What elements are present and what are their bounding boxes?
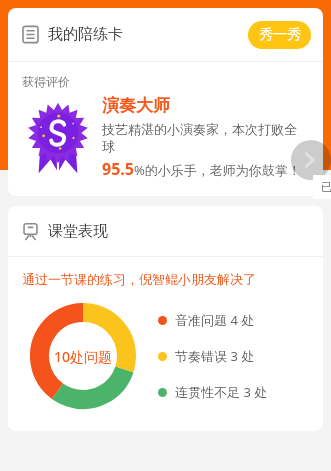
staticText: 演奏大师: [102, 95, 170, 116]
staticText: 通过一节课的练习，倪智鲲小朋友解决了: [22, 271, 256, 287]
button[interactable]: 课堂表现: [8, 206, 323, 256]
button[interactable]: Expand: [313, 175, 331, 199]
staticText: 10处问题: [54, 347, 113, 366]
staticText: 我的陪练卡: [48, 25, 123, 44]
staticText: 获得评价: [22, 74, 70, 89]
button[interactable]: 秀一秀: [248, 21, 311, 49]
staticText: 课堂表现: [48, 222, 108, 241]
button[interactable]: 我的陪练卡: [8, 8, 323, 61]
staticText: 音准问题 4 处: [175, 311, 255, 329]
staticText: 已: [321, 180, 331, 194]
staticText: 95.5%的小乐手，老师为你鼓掌！: [102, 158, 301, 180]
staticText: 连贯性不足 3 处: [175, 383, 268, 401]
button[interactable]: Next: [291, 140, 331, 180]
staticText: 秀一秀: [259, 26, 301, 44]
staticText: 节奏错误 3 处: [175, 347, 255, 365]
staticText: 技艺精湛的小演奏家，本次打败全球: [102, 121, 309, 155]
